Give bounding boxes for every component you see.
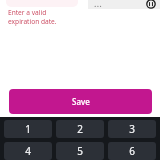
button[interactable]: 5 bbox=[56, 142, 104, 160]
staticText: 4 bbox=[25, 144, 31, 158]
button[interactable]: 6 bbox=[108, 142, 156, 160]
button[interactable]: Security code info bbox=[88, 0, 160, 9]
staticText: Enter a valid bbox=[8, 8, 47, 17]
staticText: 6 bbox=[129, 144, 135, 158]
staticText: expiration date. bbox=[8, 17, 57, 26]
button[interactable]: 2 bbox=[56, 120, 104, 138]
button[interactable]: 1 bbox=[4, 120, 52, 138]
staticText: 3 bbox=[129, 122, 135, 136]
button[interactable]: 3 bbox=[108, 120, 156, 138]
button[interactable]: 4 bbox=[4, 142, 52, 160]
staticText: Save bbox=[72, 96, 90, 107]
button[interactable]: Save bbox=[9, 89, 152, 114]
staticText: 5 bbox=[77, 144, 83, 158]
staticText: 1 bbox=[25, 122, 31, 136]
staticText: 2 bbox=[77, 122, 83, 136]
other: Security code info bbox=[146, 0, 156, 9]
